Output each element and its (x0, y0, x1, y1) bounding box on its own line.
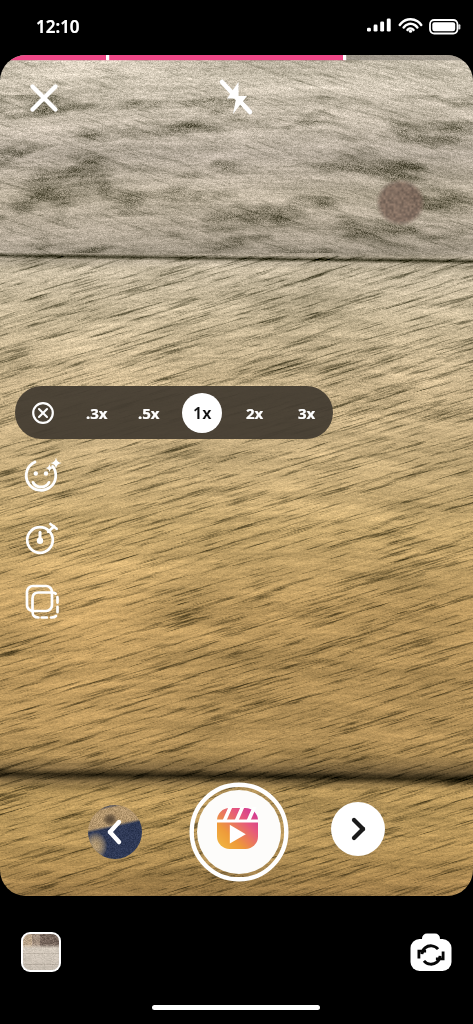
staticText: .3x (86, 403, 108, 423)
button[interactable]: .3x (71, 386, 123, 439)
button[interactable]: Timer (19, 516, 64, 561)
button[interactable]: 2x (229, 386, 281, 439)
button[interactable]: Record reel (189, 782, 289, 882)
button[interactable]: Flash off (214, 76, 258, 120)
button[interactable]: Previous clip (88, 805, 142, 859)
button[interactable]: Close zoom (15, 386, 71, 439)
button[interactable]: Close (22, 76, 66, 120)
button[interactable]: Gallery (21, 932, 61, 972)
staticText: .5x (138, 403, 160, 423)
button[interactable]: Effects (19, 453, 64, 498)
button[interactable]: Switch camera (407, 929, 455, 977)
staticText: 12:10 (36, 15, 80, 38)
staticText: 3x (298, 403, 316, 423)
staticText: 1x (193, 402, 212, 424)
button[interactable]: Layout (19, 578, 64, 623)
button[interactable]: 1x (175, 386, 229, 439)
staticText: 2x (246, 403, 264, 423)
button[interactable]: .5x (123, 386, 175, 439)
button[interactable]: Next (331, 802, 385, 856)
button[interactable]: 3x (281, 386, 333, 439)
